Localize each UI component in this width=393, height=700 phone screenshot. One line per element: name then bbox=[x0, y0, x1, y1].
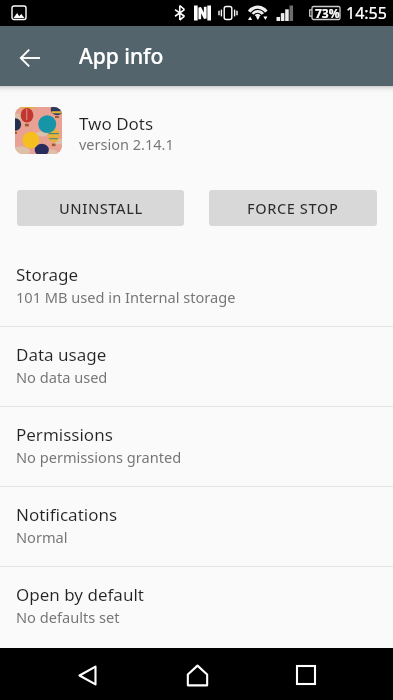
staticText: No defaults set bbox=[16, 607, 120, 627]
button[interactable]: FORCE STOP bbox=[209, 190, 377, 226]
button[interactable]: Storage bbox=[0, 247, 393, 327]
staticText: Storage bbox=[16, 263, 79, 286]
staticText: No permissions granted bbox=[16, 447, 182, 467]
button[interactable]: Permissions bbox=[0, 407, 393, 487]
staticText: 14:55 bbox=[346, 2, 387, 24]
staticText: FORCE STOP bbox=[247, 198, 339, 218]
button[interactable]: Back bbox=[61, 649, 113, 700]
staticText: Permissions bbox=[16, 423, 113, 446]
button[interactable]: Navigate up bbox=[10, 38, 50, 78]
staticText: Notifications bbox=[16, 503, 118, 526]
button[interactable]: UNINSTALL bbox=[17, 190, 184, 226]
staticText: 101 MB used in Internal storage bbox=[16, 287, 236, 307]
button[interactable]: Open by default bbox=[0, 567, 393, 647]
staticText: UNINSTALL bbox=[59, 198, 143, 218]
staticText: Two Dots bbox=[79, 112, 154, 135]
staticText: Open by default bbox=[16, 583, 144, 606]
staticText: version 2.14.1 bbox=[79, 134, 174, 154]
staticText: Data usage bbox=[16, 343, 107, 366]
button[interactable]: Data usage bbox=[0, 327, 393, 407]
staticText: No data used bbox=[16, 367, 108, 387]
staticText: 73% bbox=[315, 5, 340, 21]
button[interactable]: Notifications bbox=[0, 487, 393, 567]
button[interactable]: Home bbox=[171, 649, 223, 700]
staticText: App info bbox=[79, 42, 164, 71]
button[interactable]: Recent apps bbox=[280, 649, 332, 700]
staticText: Normal bbox=[16, 527, 68, 547]
